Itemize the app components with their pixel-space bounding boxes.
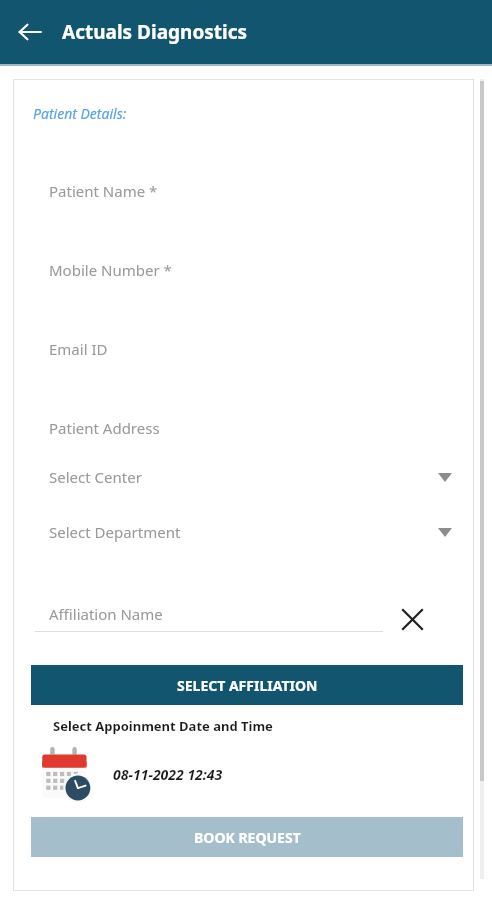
button[interactable]: SELECT AFFILIATION	[31, 665, 463, 705]
button[interactable]: Mobile Number *	[13, 259, 474, 281]
button[interactable]: Select Center	[13, 465, 474, 489]
staticText: Select Appoinment Date and Time	[53, 717, 273, 735]
staticText: Patient Name *	[49, 181, 158, 201]
staticText: Actuals Diagnostics	[62, 19, 248, 45]
button[interactable]: Patient Address	[13, 417, 474, 439]
button[interactable]: Clear affiliation	[391, 602, 433, 636]
button[interactable]: Pick date and time	[37, 745, 95, 803]
staticText: Mobile Number *	[49, 260, 172, 280]
button[interactable]: Email ID	[13, 338, 474, 360]
staticText: Affiliation Name	[49, 604, 163, 624]
staticText: Patient Address	[49, 418, 160, 438]
button[interactable]: Patient Name *	[13, 180, 474, 202]
staticText: Select Center	[49, 467, 142, 487]
staticText: 08-11-2022 12:43	[113, 765, 223, 784]
button[interactable]: Affiliation Name	[35, 602, 383, 632]
button[interactable]: Back	[6, 8, 54, 56]
staticText: Patient Details:	[33, 104, 127, 123]
button[interactable]: BOOK REQUEST	[31, 817, 463, 857]
staticText: Email ID	[49, 339, 108, 359]
button[interactable]: Select Department	[13, 520, 474, 544]
staticText: Select Department	[49, 522, 181, 542]
staticText: BOOK REQUEST	[194, 828, 301, 847]
staticText: SELECT AFFILIATION	[177, 676, 318, 695]
